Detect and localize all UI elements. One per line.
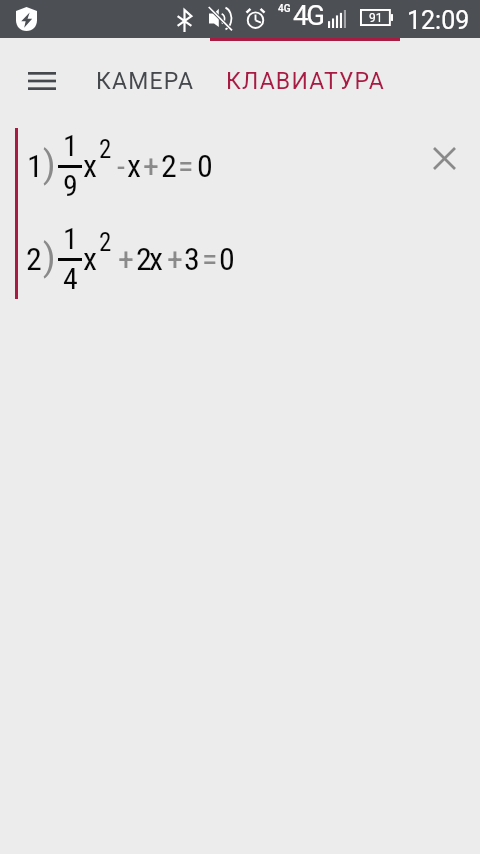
staticText: 4G xyxy=(278,3,291,15)
button[interactable]: Close result xyxy=(428,142,460,174)
staticText: x xyxy=(127,147,142,185)
staticText: 9 xyxy=(63,168,78,203)
staticText: 1 xyxy=(27,147,43,185)
staticText: + xyxy=(118,240,134,278)
staticText: 2 xyxy=(161,147,177,185)
staticText: ) xyxy=(43,237,56,279)
staticText: 3 xyxy=(184,240,200,278)
button[interactable]: КАМЕРА xyxy=(76,61,214,101)
staticText: 4 xyxy=(63,261,78,296)
staticText: КАМЕРА xyxy=(96,68,195,95)
staticText: КЛАВИАТУРА xyxy=(226,68,385,95)
staticText: 2 xyxy=(136,240,152,278)
staticText: 1 xyxy=(63,221,78,256)
staticText: ) xyxy=(43,144,56,186)
button[interactable]: Result 2: 1/4 x squared plus 2x plus 3 =… xyxy=(15,215,415,301)
staticText: + xyxy=(167,240,183,278)
staticText: 0 xyxy=(219,240,235,278)
staticText: = xyxy=(202,240,218,278)
staticText: 2 xyxy=(99,135,112,164)
staticText: - xyxy=(117,147,125,185)
staticText: 1 xyxy=(63,128,78,163)
staticText: + xyxy=(143,147,159,185)
staticText: x xyxy=(83,147,98,185)
staticText: 0 xyxy=(197,147,213,185)
staticText: 2 xyxy=(99,228,112,257)
staticText: = xyxy=(178,147,194,185)
button[interactable]: Result 1: 1/9 x squared minus x plus 2 =… xyxy=(15,124,415,210)
staticText: x xyxy=(83,240,98,278)
button[interactable]: КЛАВИАТУРА xyxy=(214,61,396,101)
staticText: 12:09 xyxy=(407,6,470,35)
staticText: 2 xyxy=(26,240,42,278)
staticText: 91 xyxy=(369,11,383,25)
button[interactable]: Open navigation menu xyxy=(14,61,70,101)
staticText: 4G xyxy=(293,0,323,31)
staticText: x xyxy=(149,240,164,278)
